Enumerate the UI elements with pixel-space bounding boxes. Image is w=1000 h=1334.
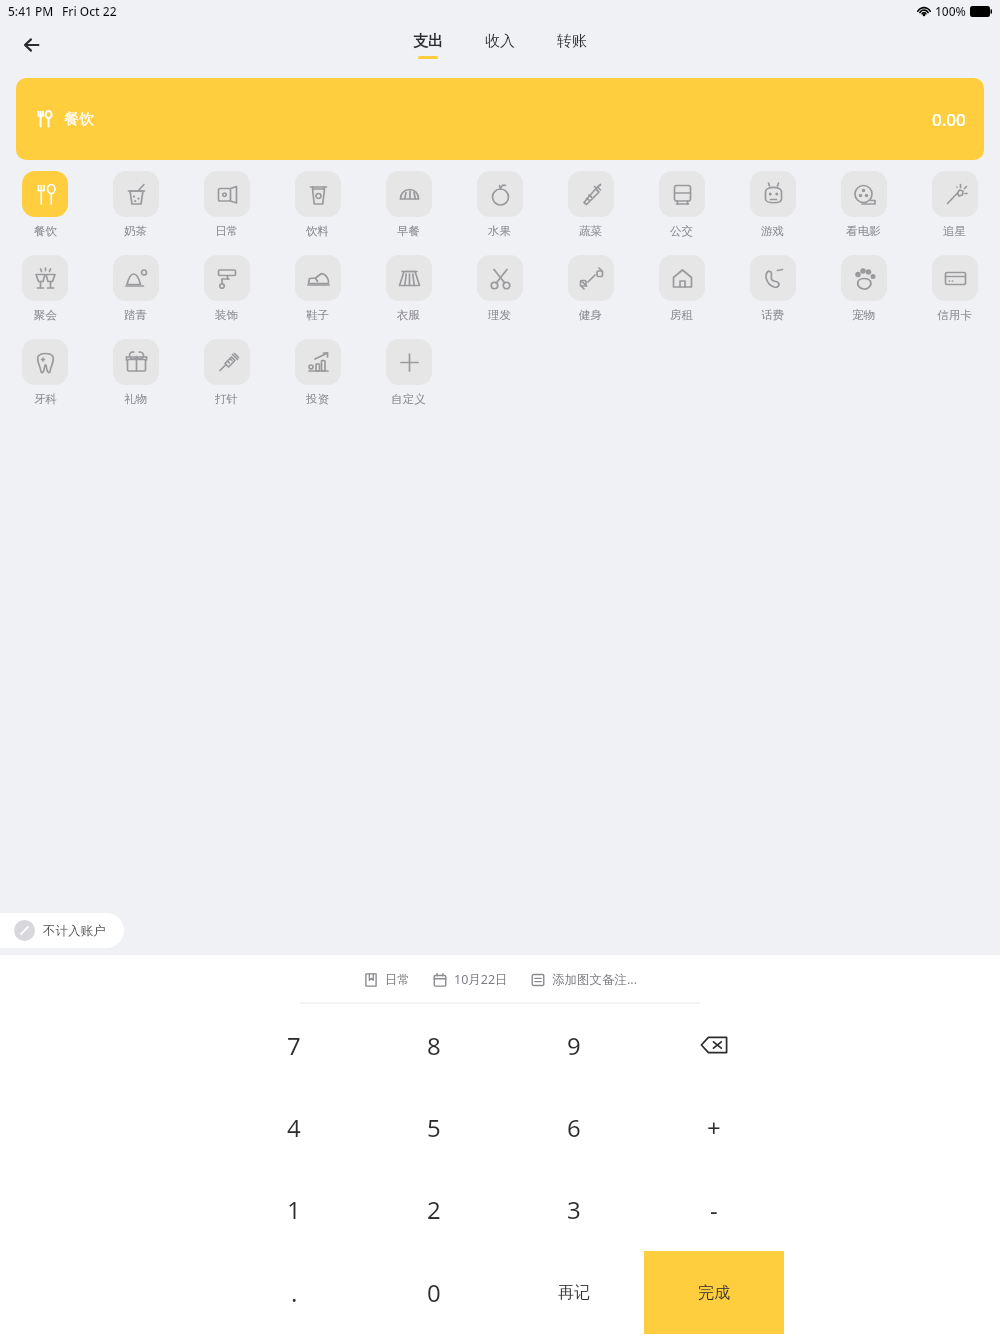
button[interactable]: 6 [504,1086,644,1168]
staticText: 2 [427,1193,441,1226]
button[interactable]: 添加图文备注... [530,971,638,988]
button[interactable]: 打针 [181,339,272,423]
button[interactable]: 宠物 [818,255,909,339]
staticText: 添加图文备注... [552,971,638,988]
button[interactable]: 信用卡 [909,255,1000,339]
staticText: 自定义 [391,392,426,406]
staticText: 5 [427,1111,441,1144]
staticText: 看电影 [846,224,881,238]
button[interactable]: 公交 [636,171,727,255]
staticText: 不计入账户 [43,923,106,939]
staticText: 饮料 [306,224,329,238]
staticText: 100% [935,3,966,19]
button[interactable]: . [224,1251,364,1334]
button[interactable]: 早餐 [363,171,454,255]
button[interactable]: 饮料 [272,171,363,255]
staticText: 打针 [215,392,238,406]
staticText: 健身 [579,308,602,322]
button[interactable]: 2 [364,1168,504,1251]
button[interactable]: 支出 [411,32,445,59]
button[interactable]: 健身 [545,255,636,339]
button[interactable]: 日常 [181,171,272,255]
staticText: 追星 [943,224,966,238]
button[interactable]: 奶茶 [90,171,181,255]
staticText: 蔬菜 [579,224,602,238]
button[interactable]: 自定义 [363,339,454,423]
staticText: 鞋子 [306,308,329,322]
staticText: 房租 [670,308,693,322]
staticText: 9 [567,1029,581,1062]
staticText: 踏青 [124,308,147,322]
button[interactable]: 完成 [644,1251,784,1334]
staticText: 日常 [215,224,238,238]
staticText: 牙科 [34,392,57,406]
staticText: 公交 [670,224,693,238]
staticText: 奶茶 [124,224,147,238]
staticText: 3 [567,1193,581,1226]
staticText: 7 [287,1029,301,1062]
button[interactable]: 礼物 [90,339,181,423]
button[interactable]: 不计入账户 [14,913,106,948]
button[interactable]: 游戏 [727,171,818,255]
button[interactable]: 转账 [555,32,589,59]
staticText: 衣服 [397,308,420,322]
button[interactable]: 理发 [454,255,545,339]
staticText: 4 [287,1111,301,1144]
staticText: 转账 [557,32,587,51]
button[interactable]: - [644,1168,784,1251]
staticText: 水果 [488,224,511,238]
staticText: 10月22日 [454,971,508,988]
button[interactable]: 再记 [504,1251,644,1334]
staticText: 装饰 [215,308,238,322]
staticText: 信用卡 [937,308,972,322]
staticText: 餐饮 [64,110,94,129]
button[interactable]: Delete [644,1004,784,1086]
staticText: . [291,1276,298,1309]
button[interactable]: 3 [504,1168,644,1251]
staticText: 日常 [385,972,410,988]
staticText: 话费 [761,308,784,322]
staticText: 餐饮 [34,224,57,238]
button[interactable]: 7 [224,1004,364,1086]
button[interactable]: 追星 [909,171,1000,255]
button[interactable]: 餐饮 [0,171,90,255]
button[interactable]: 装饰 [181,255,272,339]
button[interactable]: 聚会 [0,255,90,339]
staticText: + [707,1111,721,1144]
staticText: Fri Oct 22 [62,3,117,19]
button[interactable]: 蔬菜 [545,171,636,255]
button[interactable]: Back [14,27,50,63]
staticText: 宠物 [852,308,875,322]
staticText: 1 [287,1193,301,1226]
staticText: 收入 [485,32,515,51]
button[interactable]: 8 [364,1004,504,1086]
button[interactable]: 9 [504,1004,644,1086]
button[interactable]: 房租 [636,255,727,339]
button[interactable]: 鞋子 [272,255,363,339]
button[interactable]: 衣服 [363,255,454,339]
button[interactable]: 5 [364,1086,504,1168]
button[interactable]: 收入 [483,32,517,59]
button[interactable]: 1 [224,1168,364,1251]
button[interactable]: 4 [224,1086,364,1168]
button[interactable]: + [644,1086,784,1168]
staticText: 8 [427,1029,441,1062]
button[interactable]: 餐饮 [16,78,984,160]
staticText: 0.00 [932,108,966,131]
staticText: 礼物 [124,392,147,406]
button[interactable]: 10月22日 [432,971,508,988]
button[interactable]: 投资 [272,339,363,423]
button[interactable]: 踏青 [90,255,181,339]
staticText: 5:41 PM [8,3,54,19]
button[interactable]: 日常 [363,972,410,988]
button[interactable]: 看电影 [818,171,909,255]
staticText: 理发 [488,308,511,322]
staticText: 投资 [306,392,329,406]
staticText: - [710,1193,718,1226]
button[interactable]: 话费 [727,255,818,339]
staticText: 早餐 [397,224,420,238]
staticText: 6 [567,1111,581,1144]
button[interactable]: 0 [364,1251,504,1334]
button[interactable]: 水果 [454,171,545,255]
button[interactable]: 牙科 [0,339,90,423]
